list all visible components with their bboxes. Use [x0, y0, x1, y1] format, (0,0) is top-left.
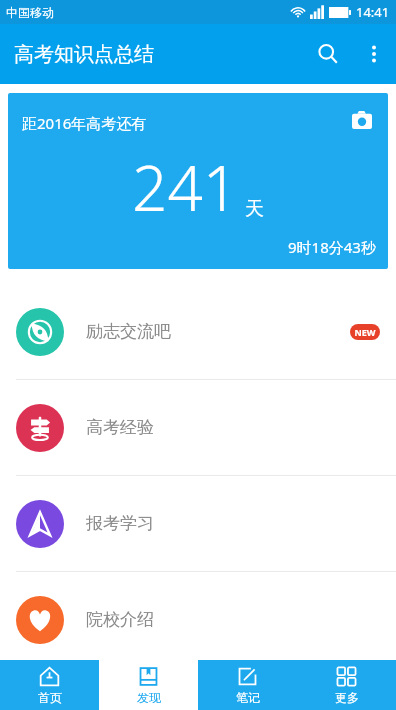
staticText: 励志交流吧	[86, 321, 171, 342]
button[interactable]: 更多	[297, 660, 396, 710]
staticText: 天	[245, 197, 264, 221]
staticText: 首页	[38, 690, 62, 705]
staticText: NEW	[354, 326, 376, 338]
button[interactable]: More options	[352, 32, 396, 76]
button[interactable]: 笔记	[198, 660, 297, 710]
staticText: 发现	[137, 690, 161, 705]
button[interactable]: 距2016年高考还有	[8, 93, 388, 269]
button[interactable]: 报考学习	[0, 476, 396, 571]
staticText: 高考经验	[86, 417, 154, 438]
staticText: 距2016年高考还有	[22, 113, 147, 133]
button[interactable]: 首页	[0, 660, 99, 710]
staticText: 报考学习	[86, 513, 154, 534]
button[interactable]: Search	[304, 30, 352, 78]
button[interactable]: 发现	[99, 660, 198, 710]
button[interactable]: 高考经验	[0, 380, 396, 475]
staticText: 241	[132, 145, 239, 229]
staticText: 高考知识点总结	[14, 42, 154, 67]
button[interactable]: Camera	[344, 101, 380, 137]
button[interactable]: 励志交流吧	[0, 284, 396, 379]
staticText: 14:41	[356, 3, 390, 21]
staticText: 更多	[335, 690, 359, 705]
button[interactable]: 院校介绍	[0, 572, 396, 667]
staticText: 笔记	[236, 690, 260, 705]
staticText: 院校介绍	[86, 609, 154, 630]
staticText: 9时18分43秒	[288, 237, 376, 257]
staticText: 中国移动	[6, 5, 54, 20]
